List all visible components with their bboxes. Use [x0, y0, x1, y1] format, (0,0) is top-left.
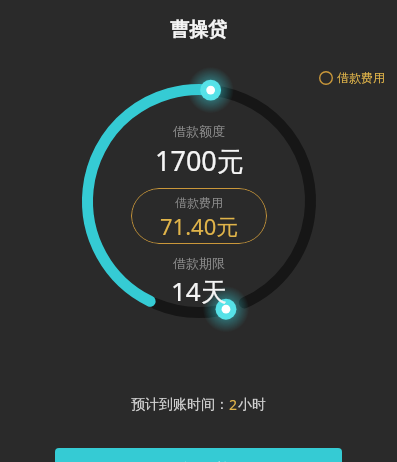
button[interactable]: 借款费用: [131, 188, 267, 244]
staticText: 借款费用: [175, 195, 223, 210]
button[interactable]: 借款费用说明: [317, 68, 387, 87]
staticText: 预计到账时间：: [131, 396, 229, 414]
staticText: 借款费用: [337, 70, 385, 85]
button[interactable]: 确认借款: [55, 448, 342, 462]
other: 借款费用说明: [319, 71, 333, 85]
staticText: 确认借款: [167, 460, 231, 462]
staticText: 71.40元: [160, 211, 239, 241]
staticText: 1700元: [155, 142, 244, 179]
staticText: 14天: [171, 273, 227, 309]
staticText: 借款期限: [173, 255, 225, 271]
staticText: 2: [229, 395, 238, 414]
staticText: 小时: [238, 396, 266, 414]
staticText: 曹操贷: [0, 18, 397, 42]
staticText: 借款额度: [173, 123, 225, 139]
